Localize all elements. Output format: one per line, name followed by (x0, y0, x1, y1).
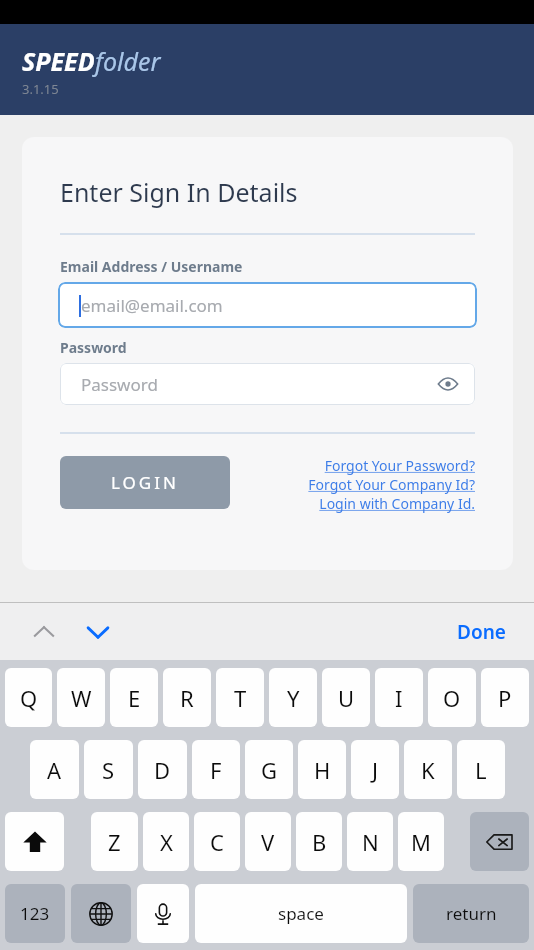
button[interactable]: V (245, 812, 291, 871)
button[interactable]: I (375, 668, 423, 727)
staticText: H (314, 755, 331, 785)
button[interactable]: space (195, 884, 407, 943)
button[interactable]: Next field (76, 610, 120, 654)
button[interactable]: B (296, 812, 342, 871)
button[interactable]: Z (91, 812, 138, 871)
staticText: U (338, 683, 355, 713)
button[interactable]: C (194, 812, 240, 871)
button[interactable]: N (347, 812, 393, 871)
button[interactable]: O (428, 668, 476, 727)
button[interactable]: Show password (433, 369, 463, 399)
button[interactable]: L (457, 740, 505, 799)
staticText: folder (95, 44, 161, 78)
staticText: R (180, 683, 194, 713)
button[interactable]: H (298, 740, 346, 799)
staticText: Enter Sign In Details (60, 175, 298, 209)
staticText: Password (60, 338, 127, 357)
button[interactable]: X (143, 812, 189, 871)
button[interactable]: M (398, 812, 444, 871)
staticText: X (160, 827, 173, 857)
staticText: D (154, 755, 171, 785)
staticText: J (372, 755, 379, 785)
staticText: return (446, 902, 497, 925)
button[interactable]: Backspace (470, 812, 529, 871)
button[interactable]: S (84, 740, 133, 799)
staticText: F (210, 755, 222, 785)
staticText: K (421, 755, 435, 785)
staticText: Y (287, 683, 300, 713)
staticText: Login with Company Id. (319, 494, 475, 513)
staticText: C (210, 827, 224, 857)
button[interactable]: Login with Company Id. (319, 494, 475, 513)
staticText: I (395, 683, 403, 713)
button[interactable]: T (216, 668, 264, 727)
staticText: Email Address / Username (60, 257, 243, 276)
staticText: O (443, 683, 461, 713)
staticText: A (47, 755, 62, 785)
button[interactable]: Done (457, 619, 506, 645)
staticText: E (128, 683, 141, 713)
button[interactable]: Q (5, 668, 52, 727)
staticText: B (312, 827, 327, 857)
staticText: 123 (20, 902, 50, 925)
button[interactable]: D (138, 740, 187, 799)
staticText: email@email.com (81, 294, 223, 317)
staticText: 3.1.15 (22, 80, 59, 98)
button[interactable]: Dictate (137, 884, 189, 943)
button[interactable]: A (30, 740, 79, 799)
button[interactable]: Previous field (22, 610, 66, 654)
staticText: Done (457, 619, 506, 645)
button[interactable]: E (110, 668, 158, 727)
staticText: S (102, 755, 115, 785)
button[interactable]: W (57, 668, 105, 727)
button[interactable]: R (163, 668, 211, 727)
staticText: Password (81, 373, 158, 396)
button[interactable]: return (413, 884, 529, 943)
button[interactable]: Y (269, 668, 317, 727)
staticText: G (261, 755, 278, 785)
button[interactable]: Forgot Your Company Id? (308, 475, 475, 494)
button[interactable]: P (481, 668, 529, 727)
staticText: T (234, 683, 247, 713)
button[interactable]: Forgot Your Password? (324, 456, 475, 475)
staticText: L (475, 755, 487, 785)
button[interactable]: Shift (5, 812, 64, 871)
staticText: Q (20, 683, 38, 713)
staticText: V (261, 827, 275, 857)
button[interactable]: Change keyboard language (71, 884, 131, 943)
staticText: SPEED (22, 44, 95, 78)
staticText: N (362, 827, 379, 857)
staticText: space (278, 902, 324, 925)
button[interactable]: Password (60, 363, 475, 405)
staticText: LOGIN (111, 471, 179, 494)
button[interactable]: K (404, 740, 452, 799)
staticText: Forgot Your Company Id? (308, 475, 475, 494)
staticText: Forgot Your Password? (324, 456, 475, 475)
button[interactable]: F (192, 740, 240, 799)
button[interactable]: G (245, 740, 293, 799)
button[interactable]: 123 (5, 884, 65, 943)
button[interactable]: J (351, 740, 399, 799)
button[interactable]: email@email.com (58, 282, 477, 328)
button[interactable]: LOGIN (60, 456, 230, 509)
staticText: Z (108, 827, 121, 857)
staticText: W (71, 683, 92, 713)
staticText: M (411, 827, 431, 857)
button[interactable]: U (322, 668, 370, 727)
staticText: P (498, 683, 512, 713)
